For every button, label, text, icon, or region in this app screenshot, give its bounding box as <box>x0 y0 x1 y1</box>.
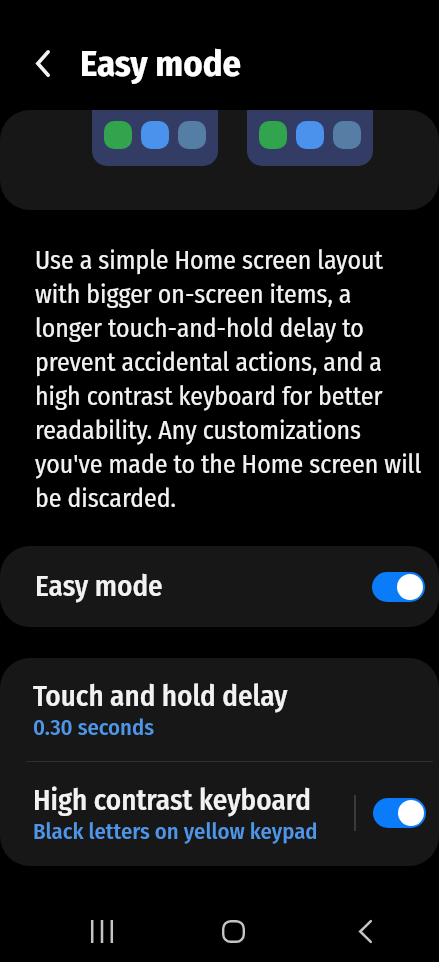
button[interactable]: High contrast keyboard <box>0 762 439 866</box>
button[interactable]: Home <box>197 895 269 962</box>
staticText: High contrast keyboard <box>33 784 312 818</box>
button[interactable]: Touch and hold delay <box>0 658 439 761</box>
button[interactable]: Navigate up <box>22 42 64 84</box>
staticText: 0.30 seconds <box>33 714 154 741</box>
staticText: Use a simple Home screen layout with big… <box>35 242 423 514</box>
staticText: Touch and hold delay <box>33 680 288 714</box>
button[interactable]: Toggle switch, on <box>372 572 425 602</box>
staticText: Easy mode <box>80 42 242 86</box>
button[interactable]: Home screen preview <box>247 110 373 166</box>
button[interactable]: Home screen preview <box>92 110 218 166</box>
button[interactable]: Easy mode <box>0 546 439 627</box>
button[interactable]: Recent apps <box>66 895 138 962</box>
button[interactable]: Back <box>329 895 401 962</box>
staticText: Easy mode <box>35 570 163 604</box>
staticText: Black letters on yellow keypad <box>33 818 318 845</box>
button[interactable]: Toggle switch, on <box>373 798 426 828</box>
